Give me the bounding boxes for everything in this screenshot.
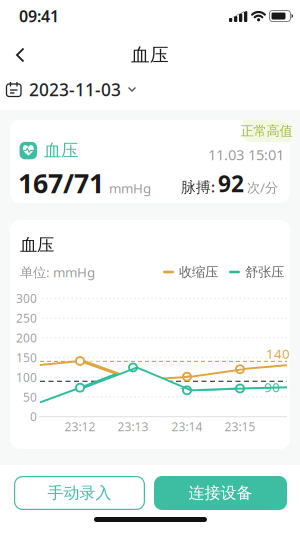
staticText: 脉搏:: [181, 177, 215, 197]
staticText: 90: [264, 378, 280, 396]
staticText: 92: [218, 168, 244, 198]
staticText: 23:14: [171, 418, 202, 434]
staticText: 手动录入: [47, 483, 111, 503]
staticText: 血压: [131, 43, 169, 66]
staticText: 连接设备: [188, 483, 252, 503]
staticText: 单位: mmHg: [20, 263, 95, 281]
staticText: 250: [16, 310, 37, 326]
staticText: 正常高值: [240, 123, 292, 139]
staticText: 23:13: [117, 418, 148, 434]
staticText: 次/分: [247, 178, 278, 196]
staticText: 血压: [20, 234, 54, 256]
button[interactable]: 手动录入: [14, 476, 145, 510]
staticText: 200: [16, 330, 37, 346]
staticText: 血压: [44, 140, 78, 161]
staticText: 23:12: [64, 418, 95, 434]
button[interactable]: 连接设备: [154, 476, 287, 510]
staticText: 0: [30, 409, 37, 425]
staticText: 100: [16, 369, 37, 385]
staticText: 140: [266, 345, 290, 362]
button[interactable]: 选择日期 2023-11-03: [6, 75, 136, 103]
staticText: mmHg: [109, 179, 151, 197]
button[interactable]: Back: [2, 37, 38, 73]
staticText: 50: [23, 389, 37, 405]
staticText: 收缩压: [179, 264, 218, 280]
staticText: 2023-11-03: [29, 78, 121, 101]
staticText: 300: [16, 290, 37, 306]
staticText: 167/71: [18, 165, 104, 201]
staticText: 舒张压: [245, 264, 284, 280]
staticText: 11.03 15:01: [208, 145, 284, 164]
staticText: 23:15: [224, 418, 255, 434]
staticText: 09:41: [19, 5, 59, 27]
staticText: 150: [16, 350, 37, 365]
